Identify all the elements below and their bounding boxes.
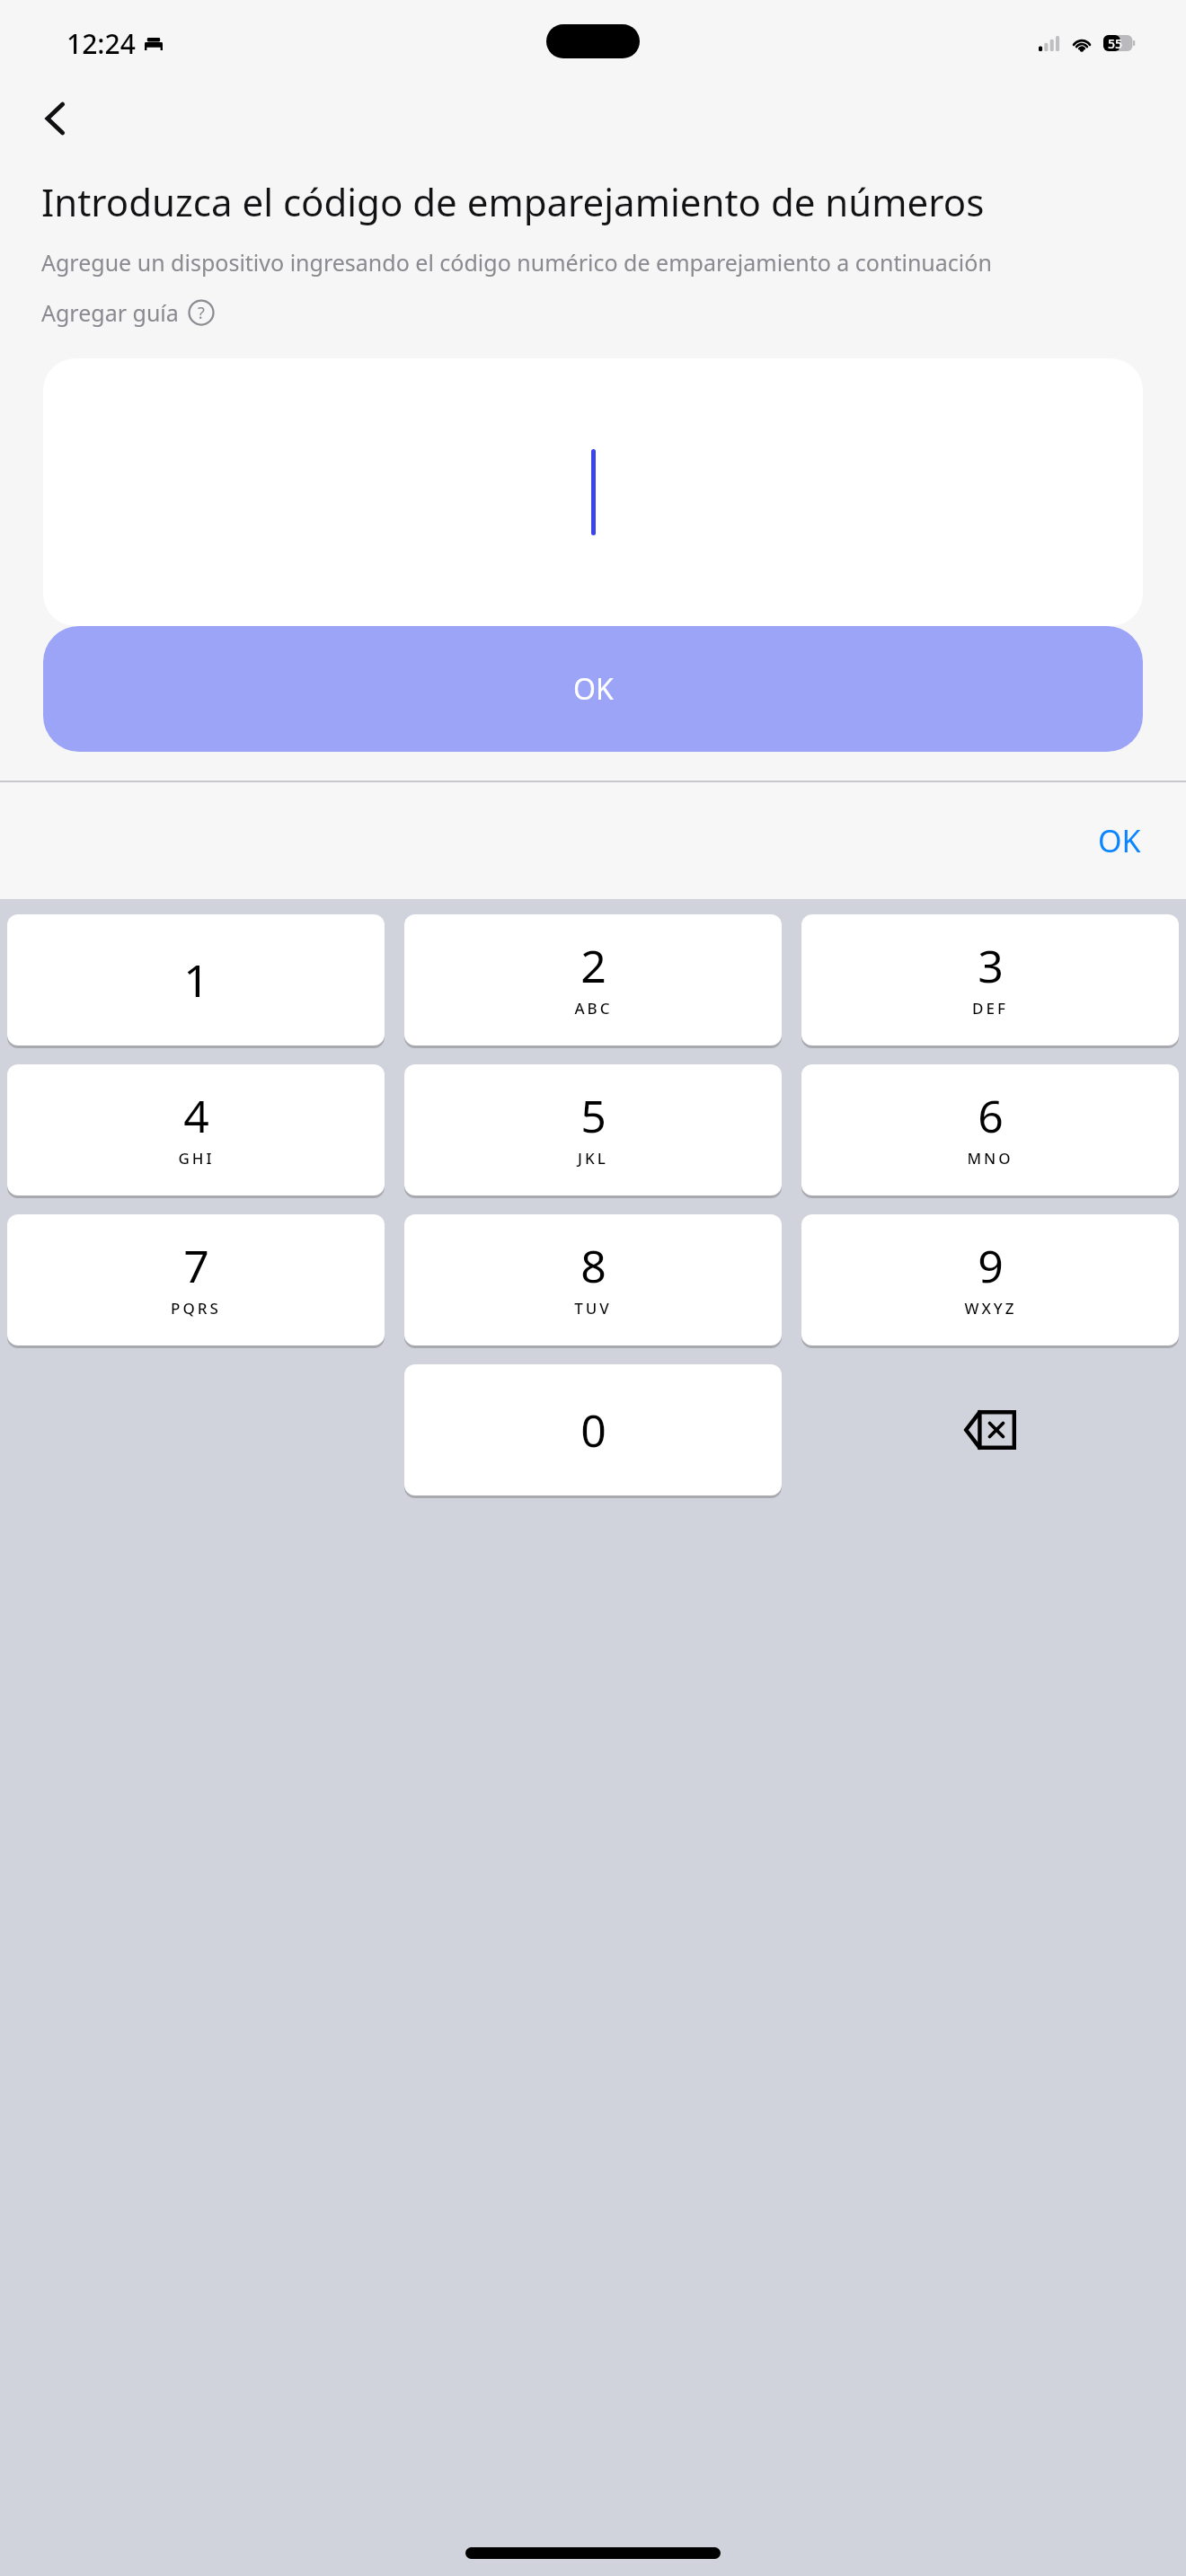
button[interactable]: 2 xyxy=(404,914,782,1045)
button[interactable]: 7 xyxy=(7,1214,385,1345)
staticText: DEF xyxy=(972,998,1008,1019)
staticText: 5 xyxy=(580,1085,606,1146)
staticText: Agregue un dispositivo ingresando el cód… xyxy=(41,247,992,278)
staticText: 55 xyxy=(1108,35,1123,51)
staticText: WXYZ xyxy=(964,1298,1017,1319)
button[interactable]: 1 xyxy=(7,914,385,1045)
staticText: 1 xyxy=(183,949,209,1010)
button[interactable]: Agregar guía xyxy=(41,297,215,328)
staticText: 4 xyxy=(183,1085,209,1146)
button[interactable]: Back xyxy=(23,86,88,151)
staticText: OK xyxy=(573,669,614,709)
button[interactable]: OK xyxy=(1098,820,1141,861)
staticText: 0 xyxy=(580,1399,606,1460)
staticText: PQRS xyxy=(171,1298,221,1319)
button[interactable]: 9 xyxy=(801,1214,1179,1345)
button[interactable]: Backspace xyxy=(801,1364,1179,1495)
staticText: OK xyxy=(1098,820,1141,861)
staticText: 3 xyxy=(978,935,1004,996)
staticText: 8 xyxy=(580,1235,606,1296)
staticText: Introduzca el código de emparejamiento d… xyxy=(41,176,985,227)
staticText: MNO xyxy=(967,1148,1013,1169)
staticText: 7 xyxy=(183,1235,209,1296)
staticText: Agregar guía xyxy=(41,297,179,328)
staticText: GHI xyxy=(178,1148,215,1169)
staticText: ? xyxy=(198,302,205,324)
staticText: 6 xyxy=(978,1085,1004,1146)
staticText: TUV xyxy=(574,1298,612,1319)
button[interactable]: OK xyxy=(43,626,1143,752)
staticText: 12:24 xyxy=(66,25,136,62)
button[interactable]: 0 xyxy=(404,1364,782,1495)
button[interactable]: 8 xyxy=(404,1214,782,1345)
staticText: JKL xyxy=(578,1148,608,1169)
staticText: 9 xyxy=(978,1235,1004,1296)
button[interactable] xyxy=(43,358,1143,626)
button[interactable]: 3 xyxy=(801,914,1179,1045)
button[interactable]: 6 xyxy=(801,1064,1179,1195)
staticText: ABC xyxy=(574,998,613,1019)
button[interactable]: 5 xyxy=(404,1064,782,1195)
button[interactable]: 4 xyxy=(7,1064,385,1195)
staticText: 2 xyxy=(580,935,606,996)
